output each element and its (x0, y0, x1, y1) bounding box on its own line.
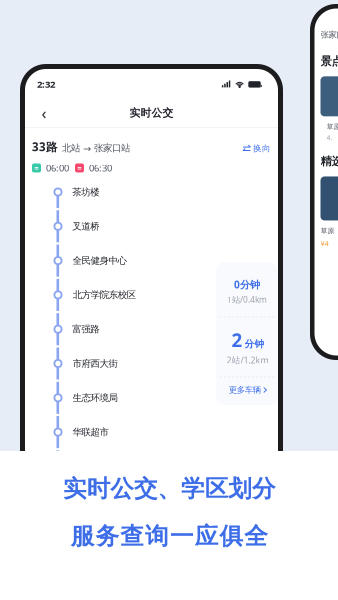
staticText: 全民健身中心 (73, 255, 127, 266)
button[interactable]: Back (33, 102, 55, 124)
staticText: 06:00 (46, 162, 69, 174)
staticText: 33路 (32, 139, 57, 155)
staticText: ‹ (41, 102, 46, 124)
staticText: 换向 (253, 143, 271, 154)
staticText: 富强路 (72, 323, 99, 335)
staticText: 更多车辆 (229, 385, 261, 395)
staticText: 分钟 (244, 338, 264, 350)
staticText: 北站 → 张家口站 (62, 142, 130, 154)
staticText: 草原 (320, 226, 334, 235)
staticText: 精选 (320, 154, 338, 168)
staticText: 0分钟 (234, 278, 260, 291)
staticText: 服务查询一应俱全 (71, 521, 267, 551)
staticText: 市府西大街 (72, 357, 117, 369)
staticText: 张家口 (320, 29, 338, 40)
staticText: 华联超市 (72, 426, 108, 438)
staticText: 实时公交 (129, 106, 173, 120)
button[interactable]: 更多车辆 (217, 376, 279, 404)
staticText: 1站/0.4km (227, 294, 267, 305)
staticText: 实时公交、学区划分 (63, 474, 275, 503)
staticText: ¥4 (320, 238, 328, 248)
staticText: 2:32 (37, 77, 55, 91)
staticText: 北方学院东校区 (73, 289, 136, 301)
button[interactable]: 换向 (243, 143, 271, 154)
staticText: 草原 (326, 122, 338, 131)
staticText: 叉道桥 (72, 220, 99, 232)
staticText: 茶坊楼 (72, 186, 99, 198)
staticText: 06:30 (89, 162, 112, 174)
staticText: 景点 (320, 54, 338, 68)
staticText: 生态环境局 (72, 392, 117, 404)
staticText: 2 (231, 327, 242, 353)
staticText: 4. (326, 133, 332, 142)
staticText: 2站/1.2km (226, 354, 268, 366)
